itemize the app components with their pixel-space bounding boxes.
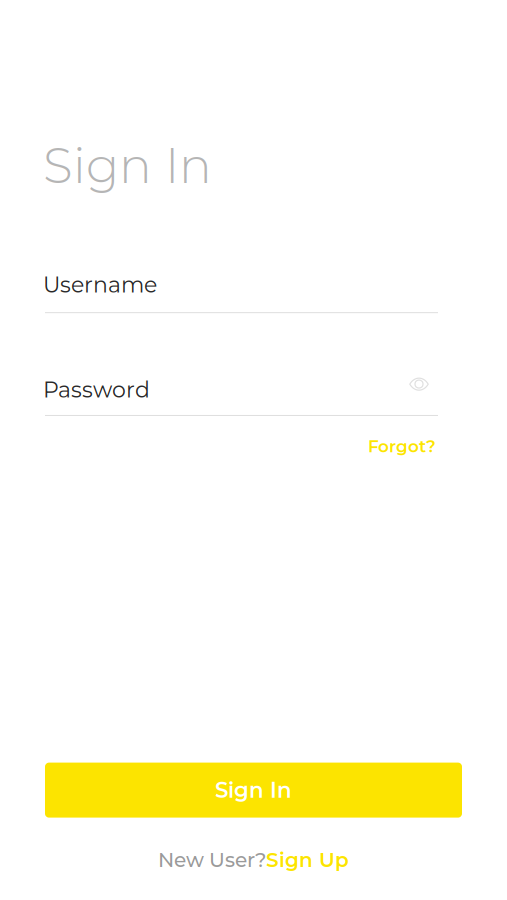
button[interactable]: Sign Up bbox=[266, 848, 349, 872]
button[interactable]: Show password bbox=[409, 378, 436, 402]
button[interactable]: Forgot? bbox=[368, 436, 436, 456]
button[interactable]: Password bbox=[43, 376, 150, 403]
button[interactable]: Sign In bbox=[45, 763, 462, 818]
button[interactable]: Username bbox=[43, 271, 436, 313]
staticText: Sign Up bbox=[266, 848, 349, 872]
staticText: Username bbox=[43, 271, 157, 298]
staticText: Password bbox=[43, 376, 150, 403]
staticText: Sign In bbox=[43, 136, 212, 195]
staticText: Forgot? bbox=[368, 436, 436, 456]
staticText: New User? bbox=[158, 848, 266, 872]
staticText: Sign In bbox=[215, 777, 292, 803]
